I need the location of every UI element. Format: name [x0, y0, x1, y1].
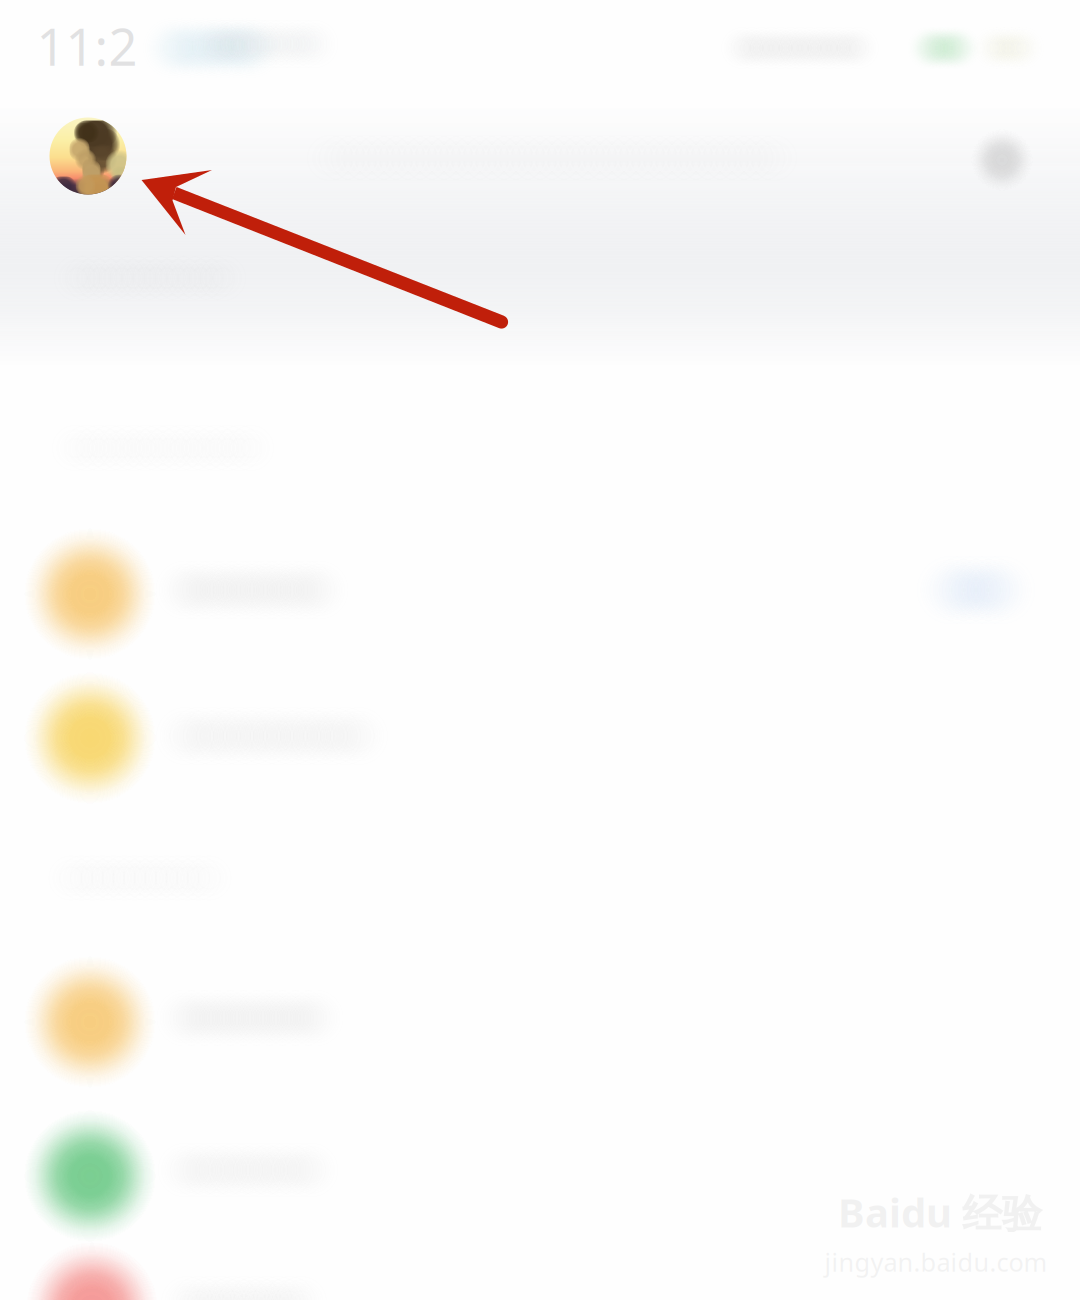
staticText: jingyan.baidu.com	[824, 1245, 1047, 1279]
staticText: Baidu 经验	[838, 1185, 1042, 1239]
staticText: 11:2	[36, 12, 137, 80]
